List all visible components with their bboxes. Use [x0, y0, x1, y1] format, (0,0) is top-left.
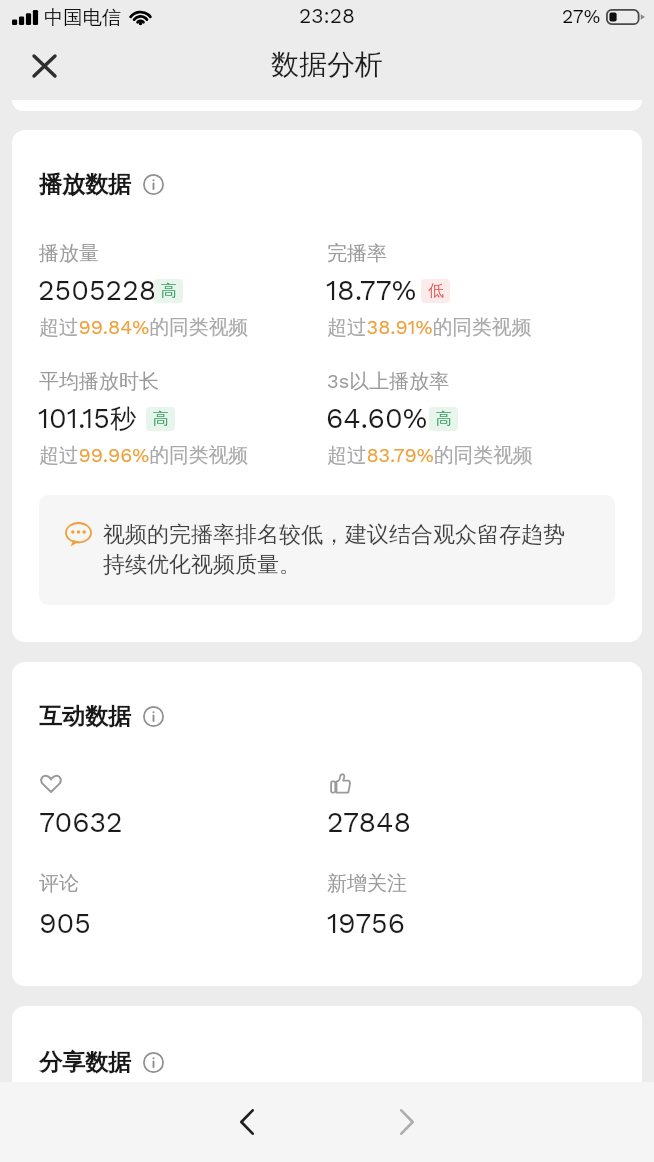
staticText: 平均播放时长	[39, 369, 159, 394]
staticText: 高	[161, 281, 177, 301]
button[interactable]: Forward	[377, 1092, 437, 1152]
staticText: 超过99.84%的同类视频	[39, 315, 249, 340]
staticText: 905	[39, 906, 91, 939]
staticText: 70632	[39, 805, 123, 838]
staticText: 超过38.91%的同类视频	[327, 315, 532, 340]
staticText: 分享数据	[39, 1048, 131, 1077]
staticText: 27%	[562, 5, 601, 28]
staticText: 播放数据	[39, 170, 131, 199]
staticText: 数据分析	[271, 47, 383, 82]
staticText: 超过83.79%的同类视频	[327, 443, 533, 468]
staticText: 视频的完播率排名较低，建议结合观众留存趋势持续优化视频质量。	[103, 521, 575, 579]
staticText: 19756	[327, 906, 406, 939]
staticText: 3s以上播放率	[327, 369, 450, 394]
staticText: 2505228	[38, 273, 157, 306]
staticText: 评论	[39, 871, 79, 896]
staticText: 互动数据	[39, 702, 131, 731]
button[interactable]: More info	[143, 706, 164, 727]
button[interactable]: More info	[143, 174, 164, 195]
staticText: 101.15秒	[38, 401, 137, 435]
staticText: 新增关注	[327, 871, 407, 896]
staticText: 23:28	[299, 3, 355, 28]
staticText: 中国电信	[44, 5, 122, 29]
staticText: 完播率	[327, 241, 387, 266]
staticText: 低	[428, 281, 444, 301]
staticText: 27848	[327, 805, 411, 838]
staticText: 18.77%	[326, 273, 417, 306]
staticText: 播放量	[39, 241, 99, 266]
staticText: 高	[153, 409, 169, 429]
button[interactable]: Back	[217, 1092, 277, 1152]
staticText: 高	[436, 409, 452, 429]
staticText: 超过99.96%的同类视频	[39, 443, 249, 468]
staticText: 64.60%	[326, 401, 428, 434]
button[interactable]: Close	[21, 42, 68, 89]
button[interactable]: More info	[143, 1052, 164, 1073]
